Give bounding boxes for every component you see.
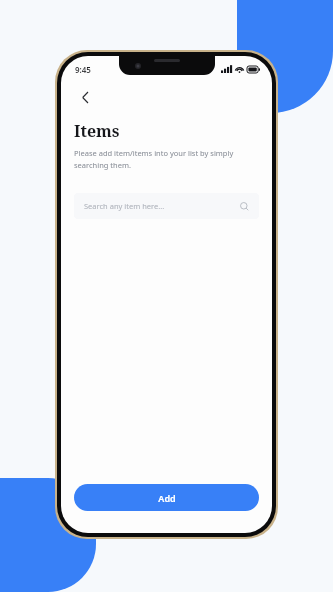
button[interactable]: Back [74,86,96,108]
staticText: Items [74,120,120,142]
button[interactable]: Add [74,484,259,511]
staticText: Add [158,492,176,504]
staticText: Search any item here... [84,201,240,211]
button[interactable]: Search any item here... [74,193,259,219]
staticText: 9:45 [75,64,91,75]
staticText: Please add item/items into your list by … [74,148,234,171]
